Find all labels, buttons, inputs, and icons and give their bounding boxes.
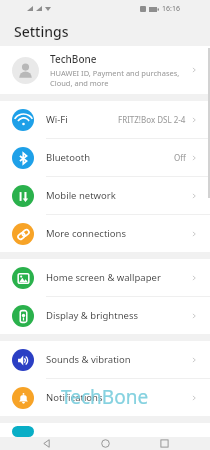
staticText: Settings	[14, 22, 69, 41]
button[interactable]: Home	[92, 437, 118, 450]
staticText: Off	[174, 152, 186, 163]
staticText: Display & brightness	[46, 309, 138, 322]
button[interactable]: Notifications	[0, 379, 210, 416]
button[interactable]: Mobile network	[0, 177, 210, 214]
staticText: Mobile network	[46, 189, 116, 202]
button[interactable]: More connections	[0, 215, 210, 252]
staticText: FRITZ!Box DSL 2-4	[118, 114, 186, 125]
staticText: 16:16	[162, 4, 180, 14]
staticText: HUAWEI ID, Payment and purchases, Cloud,…	[50, 68, 180, 88]
button[interactable]: Display & brightness	[0, 297, 210, 334]
staticText: Bluetooth	[46, 151, 91, 164]
staticText: Sounds & vibration	[46, 353, 131, 366]
staticText: TechBone	[61, 384, 149, 410]
staticText: TechBone	[50, 52, 97, 66]
button[interactable]: Recent apps	[151, 437, 177, 450]
staticText: Home screen & wallpaper	[46, 271, 161, 284]
button[interactable]: Bluetooth	[0, 139, 210, 176]
staticText: More connections	[46, 227, 126, 240]
staticText: Notifications	[46, 391, 103, 404]
button[interactable]: TechBone	[0, 46, 210, 94]
button[interactable]: Sounds & vibration	[0, 341, 210, 378]
staticText: Wi-Fi	[46, 113, 68, 126]
button[interactable]: Back	[33, 437, 59, 450]
button[interactable]	[0, 423, 210, 437]
button[interactable]: Wi-Fi	[0, 101, 210, 138]
button[interactable]: Home screen & wallpaper	[0, 259, 210, 296]
